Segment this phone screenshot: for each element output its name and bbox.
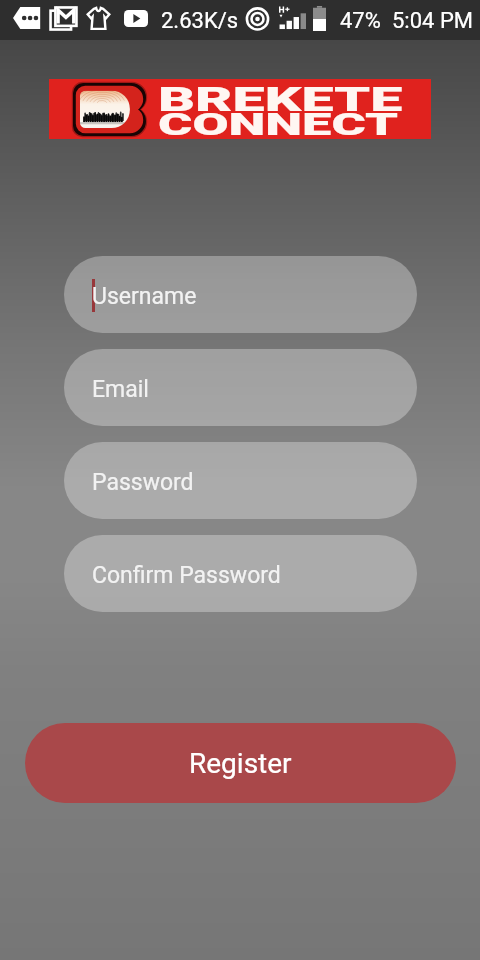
other: Notification <box>13 7 41 29</box>
staticText: CONNECT <box>158 106 400 142</box>
button[interactable]: Register <box>25 723 456 803</box>
button[interactable]: Confirm Password <box>64 535 417 612</box>
button[interactable]: Username <box>64 256 417 333</box>
staticText: Confirm Password <box>92 562 281 589</box>
button[interactable]: Email <box>64 349 417 426</box>
staticText: Password <box>92 469 194 496</box>
other: YouTube <box>124 10 148 27</box>
staticText: BREKETE <box>158 80 403 119</box>
staticText: Email <box>92 376 149 403</box>
other: Gmail <box>50 7 77 30</box>
other: Shopping <box>87 7 110 30</box>
staticText: 5:04 PM <box>392 8 473 34</box>
staticText: Username <box>92 283 197 310</box>
other: Hotspot <box>246 7 269 30</box>
button[interactable]: Password <box>64 442 417 519</box>
other: Mobile signal <box>279 6 306 30</box>
staticText: Register <box>189 747 292 780</box>
staticText: 47% <box>340 8 381 34</box>
staticText: 2.63K/s <box>161 8 239 34</box>
other: Battery <box>313 6 326 31</box>
